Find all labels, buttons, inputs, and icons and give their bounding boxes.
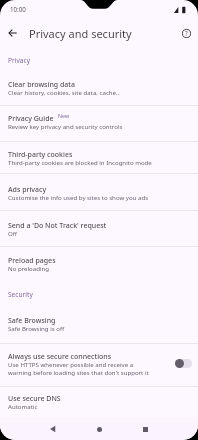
staticText: ? xyxy=(185,29,188,37)
button[interactable]: Clear browsing data xyxy=(0,68,198,105)
button[interactable]: Safe Browsing xyxy=(0,307,198,344)
staticText: Privacy xyxy=(8,56,30,65)
staticText: No preloading xyxy=(8,264,49,272)
staticText: Security xyxy=(8,290,33,299)
staticText: Clear browsing data xyxy=(8,80,75,90)
staticText: Always use secure connections xyxy=(8,352,112,362)
button[interactable]: Use secure DNS xyxy=(0,386,198,418)
staticText: Customise the info used by sites to show… xyxy=(8,193,149,201)
button[interactable]: Help xyxy=(176,23,196,43)
staticText: Ads privacy xyxy=(8,185,47,195)
staticText: Off xyxy=(8,229,17,237)
staticText: Privacy and security xyxy=(29,26,132,41)
staticText: Use secure DNS xyxy=(8,394,61,404)
staticText: Third-party cookies are blocked in Incog… xyxy=(8,158,152,166)
staticText: Privacy Guide xyxy=(8,114,54,124)
button[interactable]: Back xyxy=(0,20,25,45)
staticText: New xyxy=(58,112,70,119)
button[interactable]: Always use secure connections toggle xyxy=(175,359,192,368)
staticText: Safe Browsing is off xyxy=(8,324,65,332)
staticText: 10:00 xyxy=(10,5,26,13)
staticText: Use HTTPS whenever possible and receive … xyxy=(8,360,153,376)
button[interactable]: Send a 'Do Not Track' request xyxy=(0,210,198,246)
staticText: Third-party cookies xyxy=(8,150,73,160)
button[interactable]: Privacy Guide xyxy=(0,105,198,141)
button[interactable]: Home xyxy=(88,418,110,440)
staticText: Safe Browsing xyxy=(8,316,56,326)
button[interactable]: Back xyxy=(42,418,64,440)
staticText: Preload pages xyxy=(8,256,56,266)
staticText: Clear history, cookies, site data, cache… xyxy=(8,88,120,96)
staticText: Send a 'Do Not Track' request xyxy=(8,221,107,231)
staticText: Automatic xyxy=(8,402,38,410)
staticText: Review key privacy and security controls xyxy=(8,122,123,130)
button[interactable]: Always use secure connections xyxy=(0,343,198,386)
button[interactable]: Ads privacy xyxy=(0,173,198,210)
button[interactable]: Third-party cookies xyxy=(0,141,198,174)
button[interactable]: Preload pages xyxy=(0,246,198,282)
button[interactable]: Recent apps xyxy=(134,418,156,440)
